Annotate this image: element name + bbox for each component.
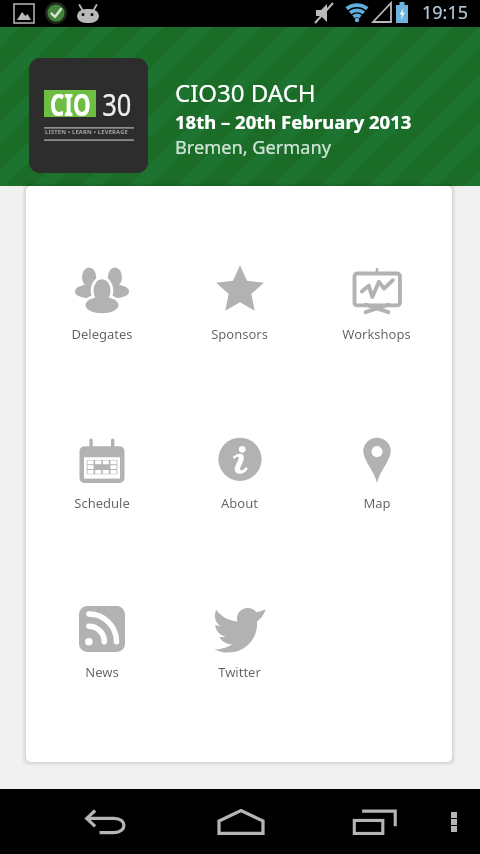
button[interactable]: More options — [428, 789, 480, 854]
button[interactable]: Schedule — [33, 437, 171, 606]
staticText: Bremen, Germany — [175, 135, 332, 160]
staticText: Delegates — [71, 325, 133, 343]
staticText: Map — [363, 494, 391, 512]
button[interactable]: News — [33, 606, 171, 762]
staticText: 19:15 — [422, 0, 469, 25]
button[interactable]: Twitter — [171, 606, 308, 762]
staticText: LISTEN • LEARN • LEVERAGE — [45, 128, 129, 136]
staticText: 30 — [102, 83, 132, 125]
button[interactable]: Back — [62, 789, 152, 854]
button[interactable]: Delegates — [33, 268, 171, 437]
staticText: CIO30 DACH — [175, 76, 316, 109]
staticText: About — [221, 494, 258, 512]
staticText: Schedule — [74, 494, 130, 512]
staticText: Sponsors — [211, 325, 268, 343]
button[interactable]: Recent apps — [330, 789, 420, 854]
staticText: CIO — [50, 83, 91, 125]
staticText: Workshops — [342, 325, 411, 343]
staticText: News — [85, 663, 119, 681]
button[interactable]: Map — [308, 437, 445, 606]
staticText: Twitter — [218, 663, 261, 681]
button[interactable]: Home — [196, 789, 286, 854]
button[interactable]: Sponsors — [171, 268, 308, 437]
button[interactable]: About — [171, 437, 308, 606]
button[interactable]: Workshops — [308, 268, 445, 437]
staticText: 18th – 20th February 2013 — [175, 109, 412, 134]
